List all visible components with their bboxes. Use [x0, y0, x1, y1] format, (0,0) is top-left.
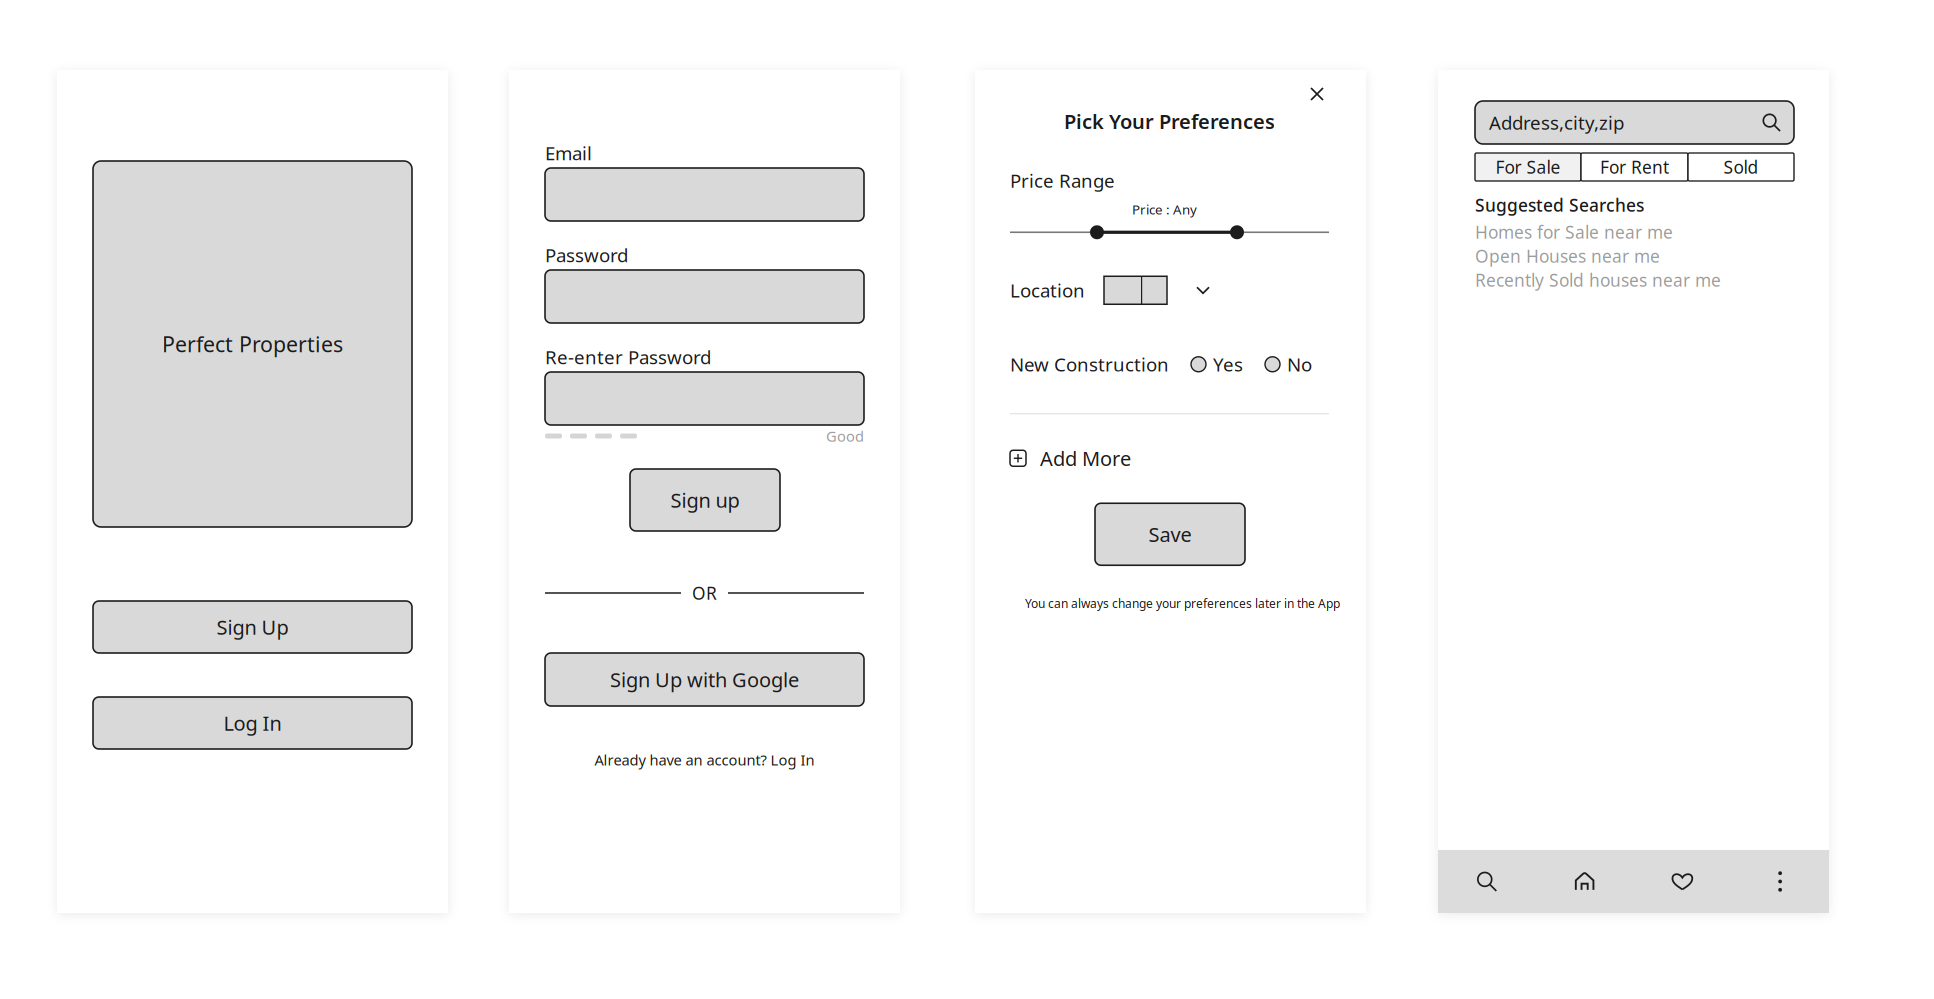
- staticText: Email: [545, 141, 592, 165]
- button[interactable]: Choose location: [1196, 286, 1210, 295]
- button[interactable]: Already have an account? Log In: [594, 750, 814, 769]
- staticText: Address,city,zip: [1489, 110, 1624, 135]
- staticText: Sign Up with Google: [610, 666, 799, 693]
- staticText: Add More: [1040, 445, 1131, 472]
- staticText: Recently Sold houses near me: [1475, 268, 1721, 291]
- staticText: Re-enter Password: [545, 345, 711, 369]
- button[interactable]: Open Houses near me: [1475, 244, 1660, 268]
- button[interactable]: Location: [1104, 276, 1167, 304]
- staticText: Sign Up: [216, 614, 288, 640]
- button[interactable]: Homes for Sale near me: [1475, 220, 1673, 244]
- button[interactable]: Sign up: [630, 469, 780, 531]
- staticText: For Rent: [1600, 155, 1669, 178]
- staticText: Price Range: [1010, 168, 1115, 193]
- staticText: Good: [826, 426, 864, 446]
- button[interactable]: Recently Sold houses near me: [1475, 268, 1721, 292]
- button[interactable]: No: [1265, 352, 1312, 377]
- button[interactable]: Sign Up: [93, 601, 412, 653]
- staticText: Sold: [1723, 155, 1758, 178]
- staticText: Save: [1148, 521, 1191, 548]
- staticText: Yes: [1213, 352, 1243, 377]
- button[interactable]: Save: [1095, 503, 1245, 565]
- staticText: Suggested Searches: [1475, 193, 1644, 216]
- staticText: Homes for Sale near me: [1475, 220, 1673, 243]
- staticText: Log In: [223, 710, 281, 736]
- staticText: Perfect Properties: [162, 330, 343, 358]
- staticText: No: [1287, 352, 1312, 377]
- staticText: Password: [545, 243, 628, 267]
- staticText: Already have an account? Log In: [594, 750, 814, 769]
- staticText: Open Houses near me: [1475, 244, 1660, 267]
- button[interactable]: Address,city,zip: [1475, 101, 1794, 144]
- staticText: Price : Any: [1132, 201, 1197, 218]
- staticText: Sign up: [670, 487, 739, 513]
- button[interactable]: Home: [1536, 850, 1634, 913]
- staticText: Location: [1010, 278, 1085, 303]
- button[interactable]: More: [1731, 850, 1829, 913]
- button[interactable]: Search: [1438, 850, 1536, 913]
- button[interactable]: Saved: [1633, 850, 1731, 913]
- button[interactable]: Close: [1305, 82, 1329, 106]
- button[interactable]: For Rent: [1581, 153, 1688, 181]
- button[interactable]: Log In: [93, 697, 412, 749]
- staticText: For Sale: [1495, 155, 1560, 178]
- button[interactable]: Sign Up with Google: [545, 653, 864, 706]
- button[interactable]: For Sale: [1475, 153, 1581, 181]
- button[interactable]: Add More: [1010, 447, 1329, 469]
- button[interactable]: Yes: [1191, 352, 1243, 377]
- staticText: OR: [692, 581, 717, 604]
- staticText: Pick Your Preferences: [1064, 108, 1275, 135]
- staticText: You can always change your preferences l…: [1025, 595, 1340, 611]
- button[interactable]: Sold: [1688, 153, 1794, 181]
- staticText: New Construction: [1010, 352, 1169, 377]
